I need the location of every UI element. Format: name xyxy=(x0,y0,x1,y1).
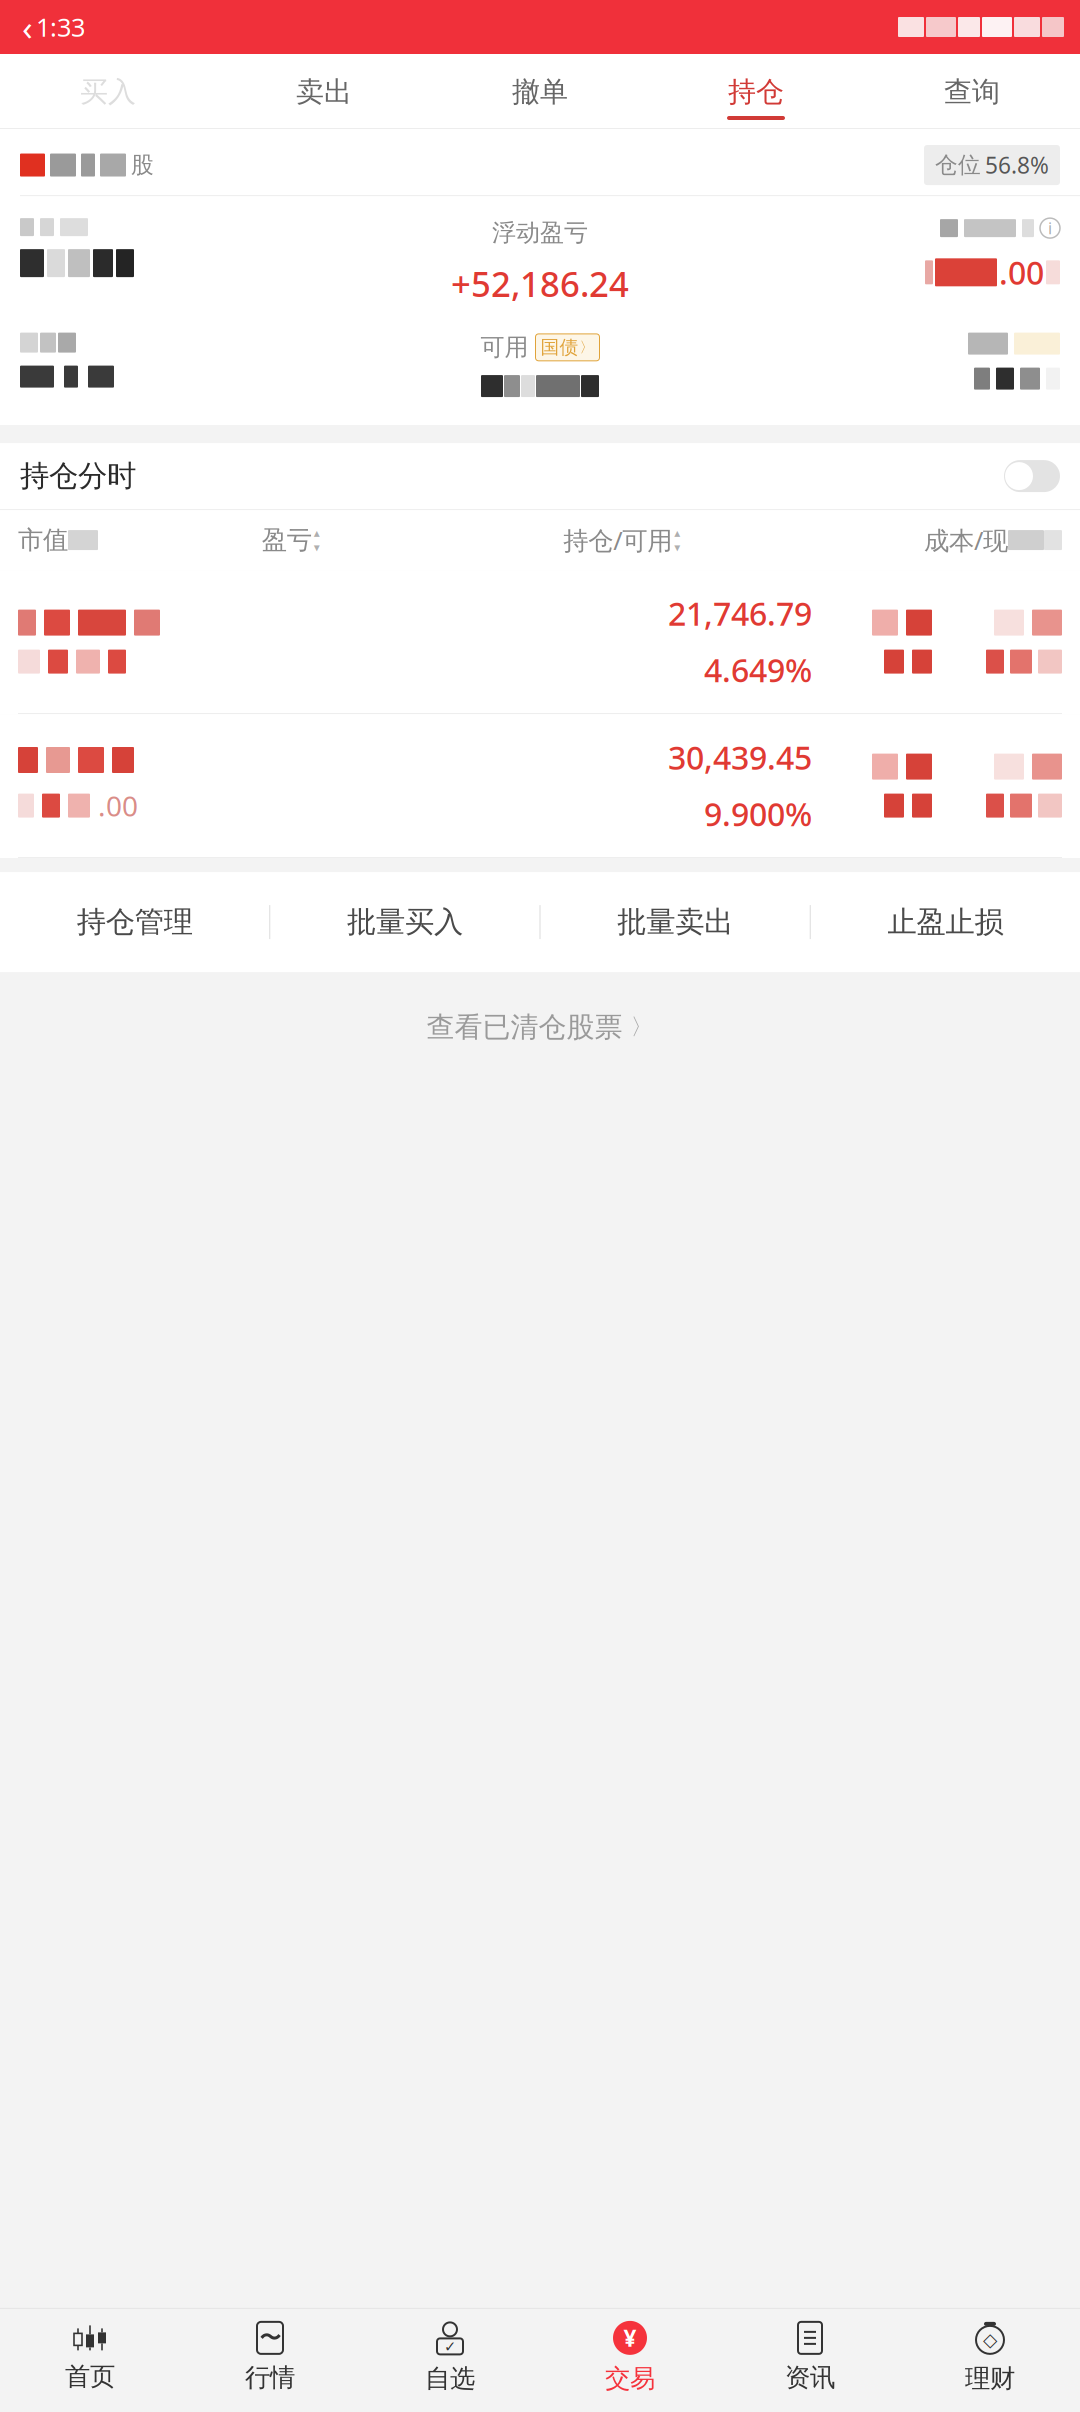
button[interactable]: 21,746.79 xyxy=(0,570,1080,714)
staticText: 批量卖出 xyxy=(617,904,733,940)
button[interactable]: 持仓 xyxy=(648,54,864,128)
staticText: 查询 xyxy=(944,75,1000,109)
staticText: ▾ xyxy=(674,541,680,554)
staticText: .00 xyxy=(98,787,138,824)
staticText: 56.8% xyxy=(985,150,1049,180)
button[interactable]: 持仓管理 xyxy=(0,872,269,972)
button[interactable]: 买入 xyxy=(0,54,216,128)
button[interactable]: 卖出 xyxy=(216,54,432,128)
staticText: 〉 xyxy=(579,338,594,356)
button[interactable]: 撤单 xyxy=(432,54,648,128)
staticText: 持仓/可用 xyxy=(563,523,672,557)
staticText: 市值 xyxy=(18,524,68,556)
staticText: .00 xyxy=(999,251,1044,294)
staticText: ‹ xyxy=(22,4,33,50)
staticText: 撤单 xyxy=(512,75,568,109)
staticText: 股 xyxy=(131,151,154,179)
staticText: 行情 xyxy=(245,2362,295,2393)
button[interactable]: 盈亏 xyxy=(262,524,320,556)
staticText: ▴ xyxy=(314,526,320,540)
staticText: ¥ xyxy=(623,2323,636,2353)
button[interactable]: 查询 xyxy=(864,54,1080,128)
button[interactable]: 查看已清仓股票 xyxy=(0,972,1080,1082)
staticText: 持仓管理 xyxy=(77,904,193,940)
staticText: 9.900% xyxy=(704,793,812,835)
staticText: 21,746.79 xyxy=(668,592,812,635)
button[interactable]: 国债 xyxy=(535,334,599,361)
staticText: 30,439.45 xyxy=(668,736,812,779)
button[interactable]: ✓ xyxy=(360,2321,540,2394)
button[interactable]: 资讯 xyxy=(720,2322,900,2393)
staticText: 交易 xyxy=(605,2363,655,2394)
staticText: 1:33 xyxy=(36,10,85,44)
button[interactable]: ¥ xyxy=(540,2321,720,2394)
staticText: 〜 xyxy=(259,2325,280,2351)
staticText: 理财 xyxy=(965,2363,1015,2394)
button[interactable]: 持仓分时开关 xyxy=(1004,460,1060,492)
button[interactable]: ◇ xyxy=(900,2321,1080,2394)
staticText: ✓ xyxy=(444,2338,456,2355)
staticText: 持仓 xyxy=(728,75,784,109)
staticText: 盈亏 xyxy=(262,524,312,556)
staticText: ▾ xyxy=(314,541,320,554)
staticText: ▴ xyxy=(674,526,680,540)
staticText: 可用 xyxy=(480,333,528,362)
button[interactable]: 批量卖出 xyxy=(540,872,810,972)
button[interactable]: 〜 xyxy=(180,2322,360,2393)
button[interactable]: 首页 xyxy=(0,2323,180,2392)
staticText: 国债 xyxy=(540,336,578,359)
staticText: 买入 xyxy=(80,75,136,109)
staticText: 持仓分时 xyxy=(20,458,136,494)
staticText: 资讯 xyxy=(785,2362,835,2393)
staticText: i xyxy=(1048,217,1052,239)
button[interactable]: 仓位 xyxy=(924,145,1060,185)
staticText: 浮动盈亏 xyxy=(492,218,588,248)
button[interactable]: .00 xyxy=(0,714,1080,858)
staticText: 卖出 xyxy=(296,75,352,109)
staticText: +52,186.24 xyxy=(451,261,629,307)
staticText: 〉 xyxy=(630,1013,653,1041)
button[interactable]: 止盈止损 xyxy=(811,872,1080,972)
staticText: 成本/现 xyxy=(924,523,1008,557)
staticText: 仓位 xyxy=(935,151,981,179)
button[interactable]: 持仓/可用 xyxy=(563,523,680,557)
staticText: 查看已清仓股票 xyxy=(426,1010,622,1044)
staticText: 首页 xyxy=(65,2361,115,2392)
staticText: 止盈止损 xyxy=(887,904,1003,940)
staticText: 4.649% xyxy=(704,649,812,691)
staticText: 批量买入 xyxy=(347,904,463,940)
staticText: ◇ xyxy=(983,2329,997,2350)
staticText: 自选 xyxy=(425,2363,475,2394)
button[interactable]: 批量买入 xyxy=(270,872,539,972)
